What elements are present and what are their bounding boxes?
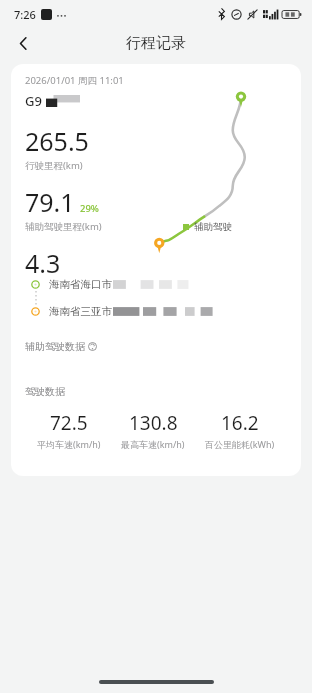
staticText: 130.8 [129, 410, 178, 436]
staticText: 7:26 [14, 7, 36, 22]
staticText: 29% [80, 202, 99, 215]
staticText: G9 [25, 92, 42, 110]
staticText: 海南省三亚市 [49, 305, 112, 318]
staticText: 平均车速(km/h) [37, 438, 101, 450]
staticText: 行驶里程(km) [25, 159, 83, 172]
staticText: 辅助驾驶 [194, 221, 232, 233]
staticText: 72.5 [50, 410, 88, 436]
staticText: 4.3 [25, 246, 61, 274]
staticText: 16.2 [221, 410, 259, 436]
staticText: 驾驶数据 [25, 385, 65, 398]
staticText: 百公里能耗(kWh) [205, 438, 275, 450]
staticText: 辅助驾驶数据 [25, 340, 85, 353]
button[interactable]: Back [6, 28, 40, 58]
staticText: 最高车速(km/h) [121, 438, 185, 450]
staticText: 265.5 [25, 124, 89, 158]
staticText: 79.1 [25, 185, 75, 219]
staticText: 海南省海口市 [49, 278, 112, 291]
staticText: 行程记录 [126, 34, 186, 53]
button[interactable]: 辅助驾驶数据 [25, 340, 97, 353]
staticText: 辅助驾驶里程(km) [25, 220, 102, 233]
staticText: 2026/01/01 周四 11:01 [25, 74, 124, 87]
